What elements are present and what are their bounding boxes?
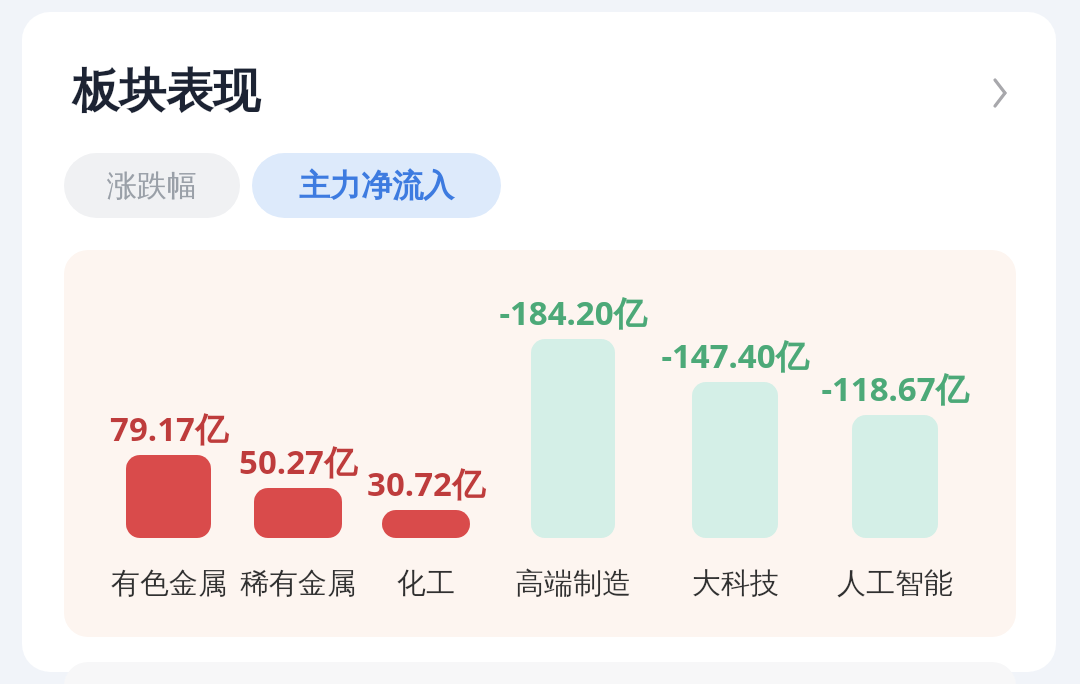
button[interactable]: 大科技 -147.40亿	[692, 382, 778, 538]
staticText: 50.27亿	[239, 439, 357, 484]
staticText: 大科技	[692, 565, 779, 602]
button[interactable]: 板块表现	[72, 62, 260, 121]
staticText: 79.17亿	[110, 406, 228, 451]
button[interactable]: 有色金属 79.17亿	[126, 455, 211, 538]
staticText: -184.20亿	[499, 290, 647, 335]
button[interactable]: 化工 30.72亿	[382, 510, 470, 538]
staticText: 主力净流入	[299, 166, 454, 205]
button[interactable]: 人工智能 -118.67亿	[852, 415, 938, 538]
button[interactable]: 高端制造 -184.20亿	[531, 339, 615, 538]
staticText: 人工智能	[837, 565, 953, 602]
staticText: 30.72亿	[367, 461, 485, 506]
staticText: 化工	[397, 565, 455, 602]
button[interactable]: 稀有金属 50.27亿	[254, 488, 342, 538]
staticText: -147.40亿	[661, 333, 809, 378]
staticText: 板块表现	[72, 62, 260, 121]
staticText: 稀有金属	[240, 565, 356, 602]
staticText: 有色金属	[111, 565, 227, 602]
staticText: 高端制造	[515, 565, 631, 602]
button[interactable]: 主力净流入	[252, 153, 501, 218]
staticText: -118.67亿	[821, 366, 969, 411]
button[interactable]: 涨跌幅	[64, 153, 240, 218]
staticText: 涨跌幅	[107, 167, 197, 205]
button[interactable]: 查看更多	[962, 57, 1034, 129]
